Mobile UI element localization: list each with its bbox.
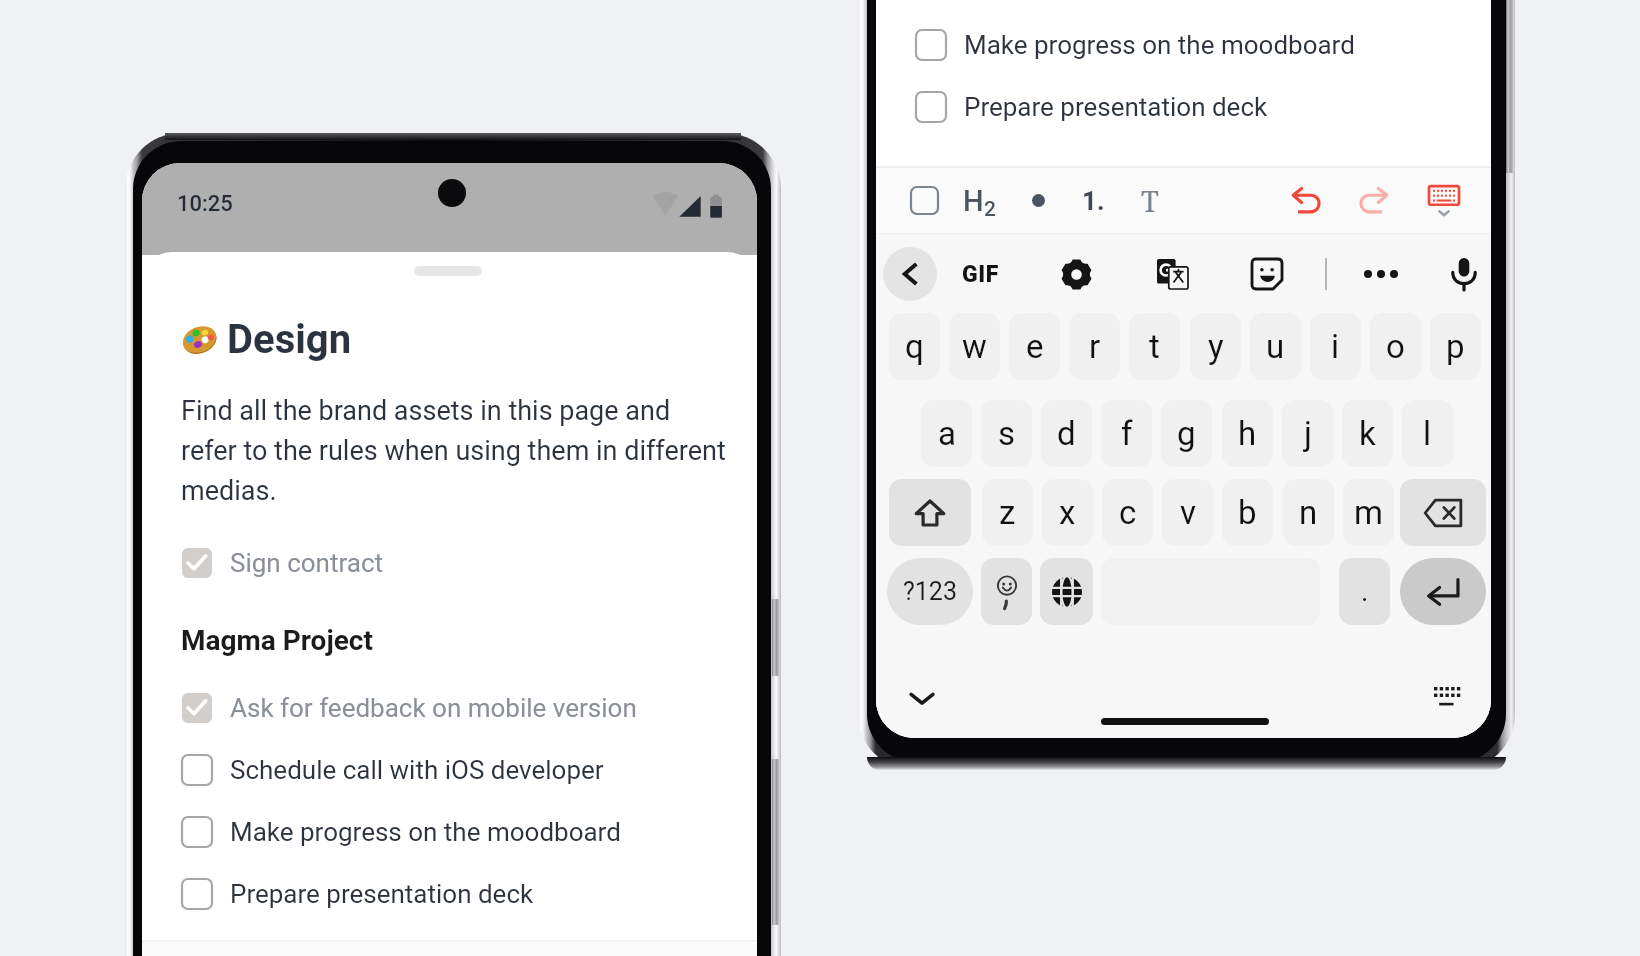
button[interactable]: Ask for feedback on mobile version — [142, 677, 757, 739]
button[interactable]: y — [1190, 313, 1241, 380]
button[interactable]: Undo — [1281, 174, 1333, 227]
button[interactable]: z — [982, 479, 1033, 546]
button[interactable]: Prepare presentation deck — [876, 76, 1491, 138]
button[interactable]: Sign contract — [142, 532, 757, 594]
staticText: Ask for feedback on mobile version — [230, 693, 637, 723]
staticText: f — [1121, 414, 1133, 453]
staticText: Make progress on the moodboard — [964, 30, 1355, 60]
button[interactable]: u — [1250, 313, 1301, 380]
button[interactable]: j — [1282, 400, 1333, 467]
staticText: d — [1057, 414, 1076, 453]
button[interactable]: More options — [1354, 247, 1408, 301]
button[interactable]: i — [1310, 313, 1361, 380]
button[interactable]: n — [1283, 479, 1334, 546]
button[interactable]: g — [1161, 400, 1212, 467]
staticText: n — [1299, 493, 1318, 532]
button[interactable]: Numbered list — [1067, 174, 1119, 227]
button[interactable]: p — [1430, 313, 1481, 380]
button[interactable]: q — [889, 313, 940, 380]
staticText: j — [1304, 414, 1312, 453]
staticText: w — [962, 327, 987, 366]
staticText: b — [1238, 493, 1257, 532]
button[interactable]: b — [1222, 479, 1273, 546]
staticText: GIF — [962, 261, 999, 288]
staticText: e — [1026, 327, 1044, 366]
staticText: Magma Project — [181, 624, 373, 657]
button[interactable]: Checklist — [898, 174, 950, 227]
button[interactable]: Back — [883, 247, 937, 301]
button[interactable]: e — [1009, 313, 1060, 380]
staticText: H — [963, 184, 984, 218]
button[interactable]: Emoji — [981, 558, 1032, 625]
staticText: v — [1180, 493, 1196, 532]
staticText: y — [1208, 327, 1224, 366]
button[interactable]: Settings — [1049, 247, 1103, 301]
staticText: p — [1446, 327, 1465, 366]
button[interactable]: r — [1069, 313, 1120, 380]
button[interactable]: Hide keyboard — [900, 676, 944, 720]
staticText: z — [999, 493, 1016, 532]
button[interactable]: Shift — [889, 479, 971, 546]
staticText: h — [1238, 414, 1257, 453]
button[interactable]: Text style — [1124, 174, 1176, 227]
staticText: l — [1423, 414, 1432, 453]
button[interactable]: Schedule call with iOS developer — [142, 739, 757, 801]
staticText: Make progress on the moodboard — [230, 817, 621, 847]
staticText: s — [998, 414, 1016, 453]
button[interactable]: a — [921, 400, 972, 467]
button[interactable]: m — [1343, 479, 1394, 546]
button[interactable]: Make progress on the moodboard — [876, 14, 1491, 76]
staticText: Schedule call with iOS developer — [230, 755, 604, 785]
button[interactable]: d — [1041, 400, 1092, 467]
staticText: 10:25 — [177, 191, 233, 217]
staticText: i — [1331, 327, 1340, 366]
button[interactable]: Prepare presentation deck — [142, 863, 757, 925]
staticText: o — [1386, 327, 1405, 366]
button[interactable]: x — [1042, 479, 1093, 546]
button[interactable]: Voice input — [1437, 247, 1491, 301]
button[interactable]: Heading 2 — [953, 174, 1005, 227]
button[interactable]: GIF — [953, 247, 1007, 301]
staticText: . — [1361, 575, 1369, 608]
button[interactable]: Change language — [1040, 558, 1093, 625]
button[interactable]: l — [1402, 400, 1453, 467]
staticText: q — [905, 327, 924, 366]
button[interactable]: k — [1342, 400, 1393, 467]
button[interactable]: Bulleted list — [1012, 174, 1064, 227]
staticText: t — [1149, 327, 1160, 366]
staticText: 1. — [1082, 186, 1105, 216]
staticText: Sign contract — [230, 548, 384, 578]
staticText: 2 — [984, 197, 996, 222]
staticText: u — [1266, 327, 1285, 366]
staticText: g — [1177, 414, 1196, 453]
button[interactable]: o — [1370, 313, 1421, 380]
button[interactable]: Make progress on the moodboard — [142, 801, 757, 863]
staticText: m — [1354, 493, 1383, 532]
staticText: T — [1141, 181, 1159, 220]
button[interactable]: Redo — [1347, 174, 1399, 227]
button[interactable]: ?123 — [887, 558, 973, 625]
button[interactable]: Translate — [1145, 247, 1199, 301]
button[interactable]: w — [949, 313, 1000, 380]
button[interactable]: Keyboard layout — [1425, 676, 1469, 720]
staticText: x — [1059, 493, 1076, 532]
button[interactable]: t — [1129, 313, 1180, 380]
staticText: a — [938, 414, 956, 453]
staticText: Prepare presentation deck — [230, 879, 534, 909]
staticText: r — [1089, 327, 1101, 366]
staticText: k — [1359, 414, 1376, 453]
staticText: Prepare presentation deck — [964, 92, 1268, 122]
button[interactable]: Backspace — [1400, 479, 1486, 546]
button[interactable]: Stickers — [1240, 247, 1294, 301]
button[interactable]: . — [1339, 558, 1390, 625]
button[interactable]: h — [1222, 400, 1273, 467]
button[interactable]: v — [1162, 479, 1213, 546]
staticText: ?123 — [903, 577, 957, 606]
staticText: Find all the brand assets in this page a… — [181, 395, 727, 506]
button[interactable]: c — [1102, 479, 1153, 546]
button[interactable]: s — [981, 400, 1032, 467]
button[interactable]: Keyboard — [1418, 174, 1470, 227]
button[interactable]: Enter — [1400, 558, 1486, 625]
button[interactable]: f — [1101, 400, 1152, 467]
